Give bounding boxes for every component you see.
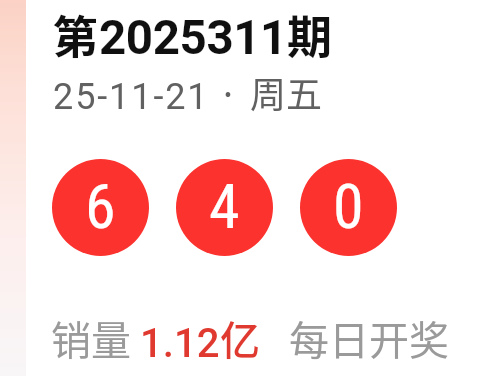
staticText: 亿 <box>220 309 260 367</box>
staticText: 25-11-21 <box>53 76 210 118</box>
staticText: 销量 <box>51 309 140 367</box>
staticText: 6 <box>85 170 116 243</box>
button[interactable]: 4 <box>176 159 273 256</box>
staticText: 1.12 <box>140 320 220 367</box>
staticText: 0 <box>333 170 364 243</box>
button[interactable]: 0 <box>300 159 397 256</box>
staticText: 每日开奖 <box>260 309 449 367</box>
staticText: 2025311 <box>99 10 287 66</box>
staticText: 期 <box>287 2 333 67</box>
button[interactable]: 6 <box>52 159 149 256</box>
staticText: 第 <box>53 2 99 67</box>
staticText: 周五 <box>250 66 323 118</box>
staticText: · <box>218 66 239 118</box>
staticText: 4 <box>209 170 240 243</box>
